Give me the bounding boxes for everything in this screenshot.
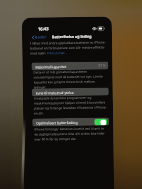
- button[interactable]: Optimalisert batterilading: [94, 118, 107, 126]
- staticText: Innebygde dynamiske programvare- og mask…: [34, 95, 108, 115]
- button[interactable]: Evne til maksimal ytelse: [32, 87, 109, 96]
- staticText: Maksimal kapasitet: [35, 64, 66, 69]
- staticText: iPhone forlenger batteriets levetid ved …: [34, 126, 108, 141]
- button[interactable]: Maksimal kapasitet: [31, 61, 108, 70]
- staticText: I likhet med andre oppladbare batterier …: [30, 40, 107, 55]
- staticText: 16:43: [38, 26, 49, 32]
- staticText: Dette er et mål på batterikapasiteten sa…: [33, 69, 108, 89]
- staticText: Batterihelse og lading: [52, 34, 92, 39]
- staticText: Evne til maksimal ytelse: [36, 90, 74, 95]
- staticText: 87 %: [98, 63, 106, 68]
- button[interactable]: Optimalisert batterilading: [32, 117, 109, 126]
- staticText: Optimalisert batterilading: [36, 120, 78, 125]
- button[interactable]: Batteri: [22, 34, 49, 40]
- staticText: Batteri: [35, 34, 47, 39]
